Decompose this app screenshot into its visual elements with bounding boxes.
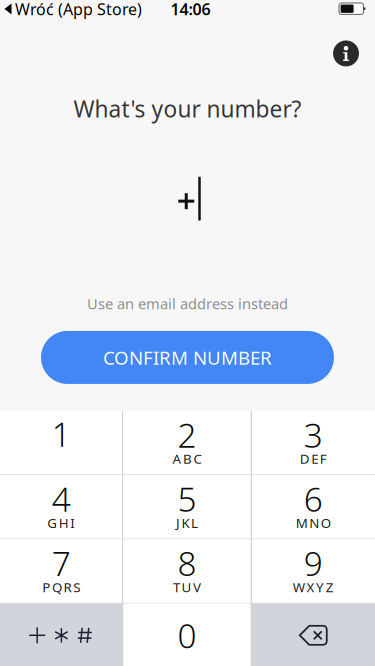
staticText: Z — [326, 578, 334, 596]
staticText: 0 — [177, 613, 196, 657]
staticText: G — [47, 514, 57, 532]
staticText: S — [73, 578, 80, 596]
staticText: M — [296, 514, 308, 532]
staticText: J — [176, 514, 180, 532]
staticText: 4 — [52, 477, 71, 521]
button[interactable]: Information — [333, 40, 359, 66]
staticText: A — [172, 450, 181, 467]
button[interactable]: Delete — [251, 603, 375, 666]
staticText: Y — [316, 578, 324, 596]
button[interactable]: 7 — [0, 539, 124, 603]
staticText: 14:06 — [170, 0, 210, 19]
button[interactable]: Wróć (App Store) — [0, 0, 142, 19]
button[interactable]: 6 — [251, 475, 375, 539]
button[interactable]: 5 — [124, 475, 249, 539]
staticText: 1 — [52, 412, 71, 456]
staticText: N — [309, 514, 319, 532]
button[interactable]: 1 — [0, 411, 124, 474]
staticText: 9 — [304, 541, 323, 585]
staticText: E — [311, 450, 318, 467]
button[interactable]: 4 — [0, 475, 124, 539]
staticText: Use an email address instead — [87, 294, 288, 313]
staticText: K — [181, 514, 189, 532]
staticText: Wróć (App Store) — [15, 0, 142, 19]
staticText: CONFIRM NUMBER — [103, 345, 272, 370]
staticText: H — [59, 514, 69, 532]
staticText: Q — [52, 578, 62, 596]
staticText: I — [70, 514, 75, 532]
staticText: B — [183, 450, 192, 467]
button[interactable]: 3 — [251, 411, 375, 474]
staticText: V — [193, 578, 201, 596]
button[interactable]: Use an email address instead — [0, 291, 375, 315]
button[interactable]: 2 — [124, 411, 249, 474]
staticText: X — [306, 578, 314, 596]
staticText: 2 — [177, 413, 196, 457]
staticText: 6 — [304, 477, 323, 521]
staticText: O — [321, 514, 331, 532]
staticText: 3 — [304, 413, 323, 457]
staticText: U — [181, 578, 191, 596]
button[interactable]: Symbols — [0, 603, 122, 666]
staticText: D — [300, 450, 310, 467]
staticText: 5 — [177, 477, 196, 521]
staticText: L — [191, 514, 198, 532]
staticText: 7 — [52, 541, 71, 585]
button[interactable]: CONFIRM NUMBER — [41, 331, 334, 384]
staticText: W — [293, 578, 305, 596]
staticText: T — [173, 578, 180, 596]
staticText: C — [194, 450, 202, 467]
staticText: R — [63, 578, 71, 596]
staticText: F — [320, 450, 327, 467]
button[interactable]: 9 — [251, 539, 375, 603]
staticText: What's your number? — [73, 94, 301, 124]
staticText: P — [42, 578, 50, 596]
staticText: 8 — [177, 541, 196, 585]
button[interactable]: 0 — [124, 603, 249, 666]
button[interactable]: 8 — [124, 539, 249, 603]
